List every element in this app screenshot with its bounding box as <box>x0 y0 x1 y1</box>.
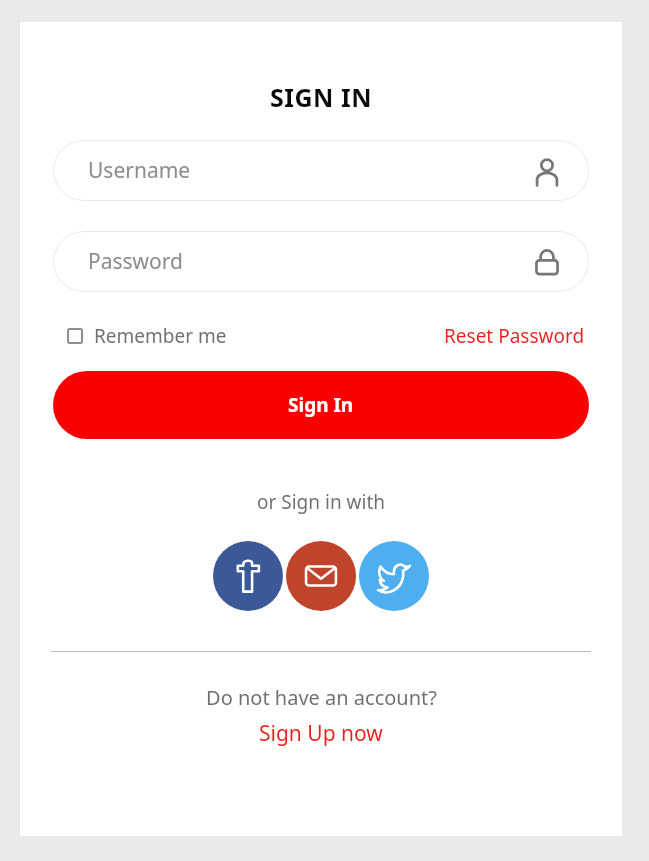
staticText: or Sign in with <box>257 489 386 515</box>
staticText: SIGN IN <box>270 80 372 114</box>
staticText: Remember me <box>94 323 227 349</box>
staticText: Sign In <box>288 392 354 418</box>
button[interactable]: Sign In <box>53 371 589 439</box>
button[interactable]: Sign in with Email <box>286 541 356 611</box>
button[interactable]: Password <box>53 231 589 292</box>
button[interactable]: Sign in with Facebook <box>213 541 283 611</box>
button[interactable]: Remember me <box>53 317 233 355</box>
button[interactable]: Sign Up now <box>253 717 389 750</box>
staticText: Reset Password <box>444 323 585 349</box>
button[interactable]: Sign in with Twitter <box>359 541 429 611</box>
staticText: Do not have an account? <box>206 684 437 711</box>
staticText: Sign Up now <box>259 719 383 748</box>
staticText: Password <box>88 247 183 276</box>
button[interactable]: Reset Password <box>440 317 589 355</box>
button[interactable]: Username <box>53 140 589 201</box>
staticText: Username <box>88 156 191 185</box>
